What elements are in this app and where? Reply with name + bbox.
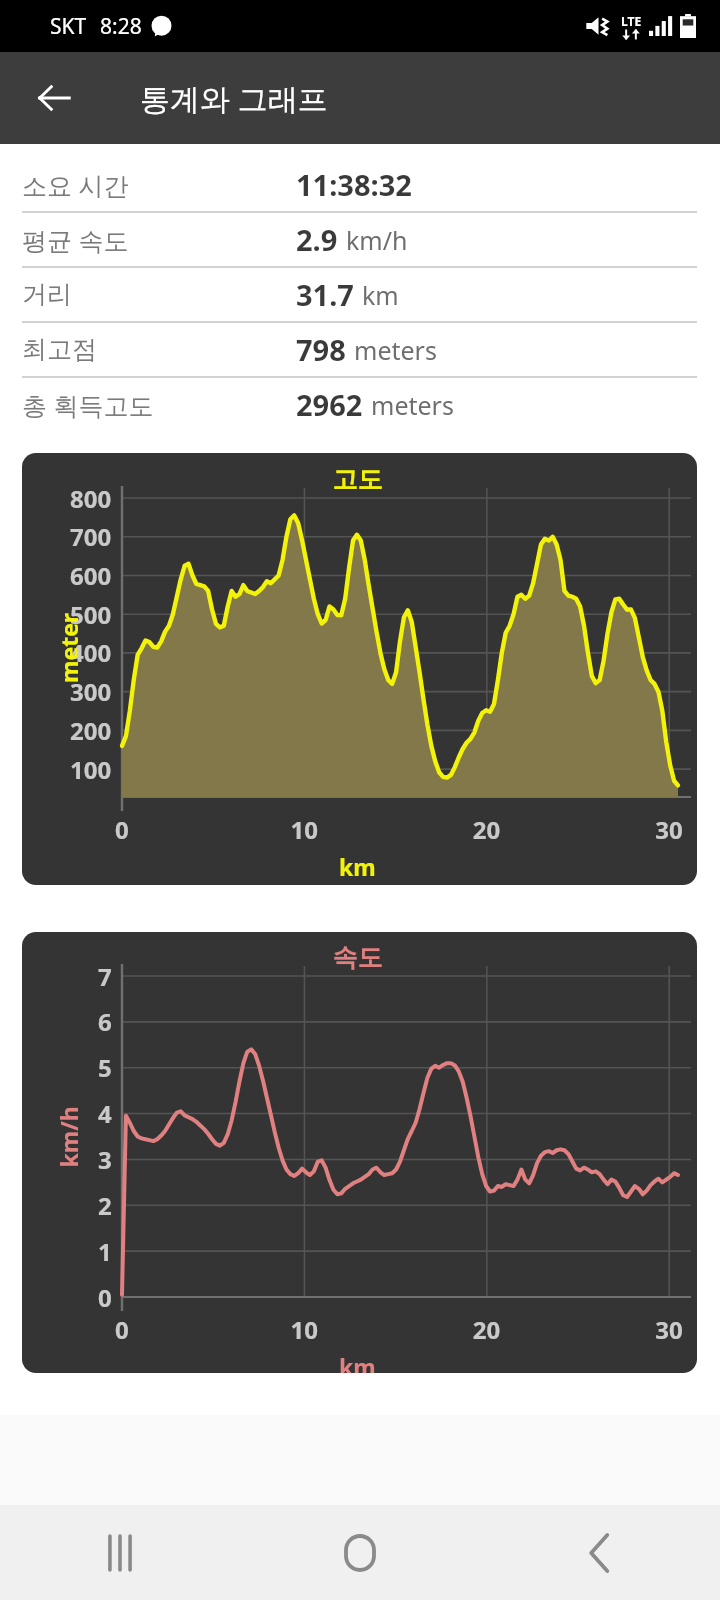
staticText: 11:38:32: [296, 165, 412, 204]
staticText: 거리: [22, 279, 72, 310]
button[interactable]: [22, 932, 697, 1373]
button[interactable]: 최고점: [0, 323, 720, 376]
staticText: 소요 시간: [22, 168, 129, 202]
staticText: 2962: [296, 385, 363, 424]
staticText: LTE: [621, 13, 642, 29]
staticText: km/h: [346, 223, 408, 257]
staticText: SKT: [50, 12, 87, 41]
staticText: 평균 속도: [22, 223, 129, 257]
button[interactable]: 평균 속도: [0, 213, 720, 266]
staticText: 798: [296, 330, 346, 369]
button[interactable]: Back: [22, 66, 86, 130]
staticText: meters: [371, 388, 454, 422]
button[interactable]: Recent apps: [0, 1505, 240, 1600]
button[interactable]: 소요 시간: [0, 158, 720, 211]
staticText: 31.7: [296, 275, 354, 314]
staticText: meters: [354, 333, 437, 367]
button[interactable]: [22, 453, 697, 885]
button[interactable]: 총 획득고도: [0, 378, 720, 431]
staticText: km: [362, 278, 399, 312]
button[interactable]: Home: [240, 1505, 480, 1600]
staticText: 2.9: [296, 220, 338, 259]
button[interactable]: Back: [480, 1505, 720, 1600]
staticText: 8:28: [100, 12, 142, 41]
button[interactable]: 거리: [0, 268, 720, 321]
staticText: 총 획득고도: [22, 388, 154, 422]
staticText: 통계와 그래프: [140, 78, 328, 119]
staticText: 최고점: [22, 334, 97, 365]
